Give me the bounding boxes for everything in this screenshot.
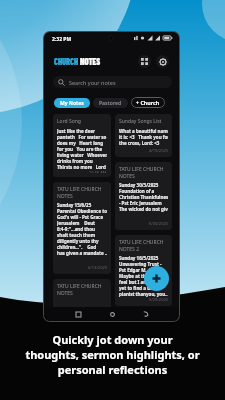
- button[interactable]: Lord Song: [53, 114, 111, 177]
- button[interactable]: Back: [139, 307, 153, 321]
- button[interactable]: Sunday Songs List: [115, 114, 172, 157]
- staticText: TATU LIFE CHURCH NOTES 2: [119, 239, 164, 252]
- staticText: Quickly jot down your thoughts, sermon h…: [25, 332, 200, 377]
- staticText: TATU LIFE CHURCH NOTES: [119, 166, 164, 179]
- button[interactable]: Recents: [71, 307, 85, 321]
- staticText: Search your notes: [69, 79, 116, 86]
- staticText: 2:32 PM: [52, 36, 72, 43]
- button[interactable]: TATU LIFE CHURCH NOTES: [115, 162, 172, 230]
- button[interactable]: Settings: [156, 55, 169, 68]
- button[interactable]: Pastored: [93, 98, 128, 108]
- staticText: Sunday 15/6/25 Parental Obedience to God…: [57, 202, 107, 256]
- staticText: Just like the deer panteth For water so …: [57, 128, 107, 170]
- staticText: 5/29/2025: [149, 297, 168, 302]
- button[interactable]: TATU LIFE CHURCH NOTES 2: [115, 235, 172, 306]
- staticText: Sunday 16/5/2025 Unwavering Trust - Pst …: [119, 255, 168, 297]
- button[interactable]: TATU LIFE CHURCH NOTES: [53, 279, 111, 314]
- staticText: Sunday 30/3/2025 Foundation of a Christi…: [119, 182, 168, 212]
- staticText: My Notes: [60, 100, 84, 107]
- button[interactable]: Grid view: [138, 55, 151, 68]
- staticText: 6/13/2025: [88, 265, 107, 270]
- staticText: CHURCH: [54, 56, 79, 66]
- button[interactable]: Search your notes: [53, 76, 172, 88]
- staticText: Lord Song: [57, 118, 81, 125]
- staticText: TATU LIFE CHURCH NOTES: [57, 186, 102, 199]
- button[interactable]: TATU LIFE CHURCH NOTES: [53, 182, 111, 274]
- staticText: TATU LIFE CHURCH NOTES: [57, 283, 102, 296]
- staticText: NOTES: [80, 56, 101, 66]
- staticText: Sunday Songs List: [119, 118, 162, 125]
- staticText: 10:56 AM: [89, 170, 107, 173]
- staticText: What a beautiful name it is: <3 Thank yo…: [119, 128, 168, 146]
- staticText: 5/30/2025: [149, 221, 168, 226]
- staticText: + Church: [136, 99, 160, 106]
- button[interactable]: Add note: [144, 266, 169, 291]
- staticText: Pastored: [99, 100, 122, 107]
- staticText: 4/19/2025: [149, 148, 168, 153]
- button[interactable]: Home: [105, 307, 119, 321]
- button[interactable]: + Church: [131, 97, 165, 108]
- button[interactable]: My Notes: [54, 98, 90, 108]
